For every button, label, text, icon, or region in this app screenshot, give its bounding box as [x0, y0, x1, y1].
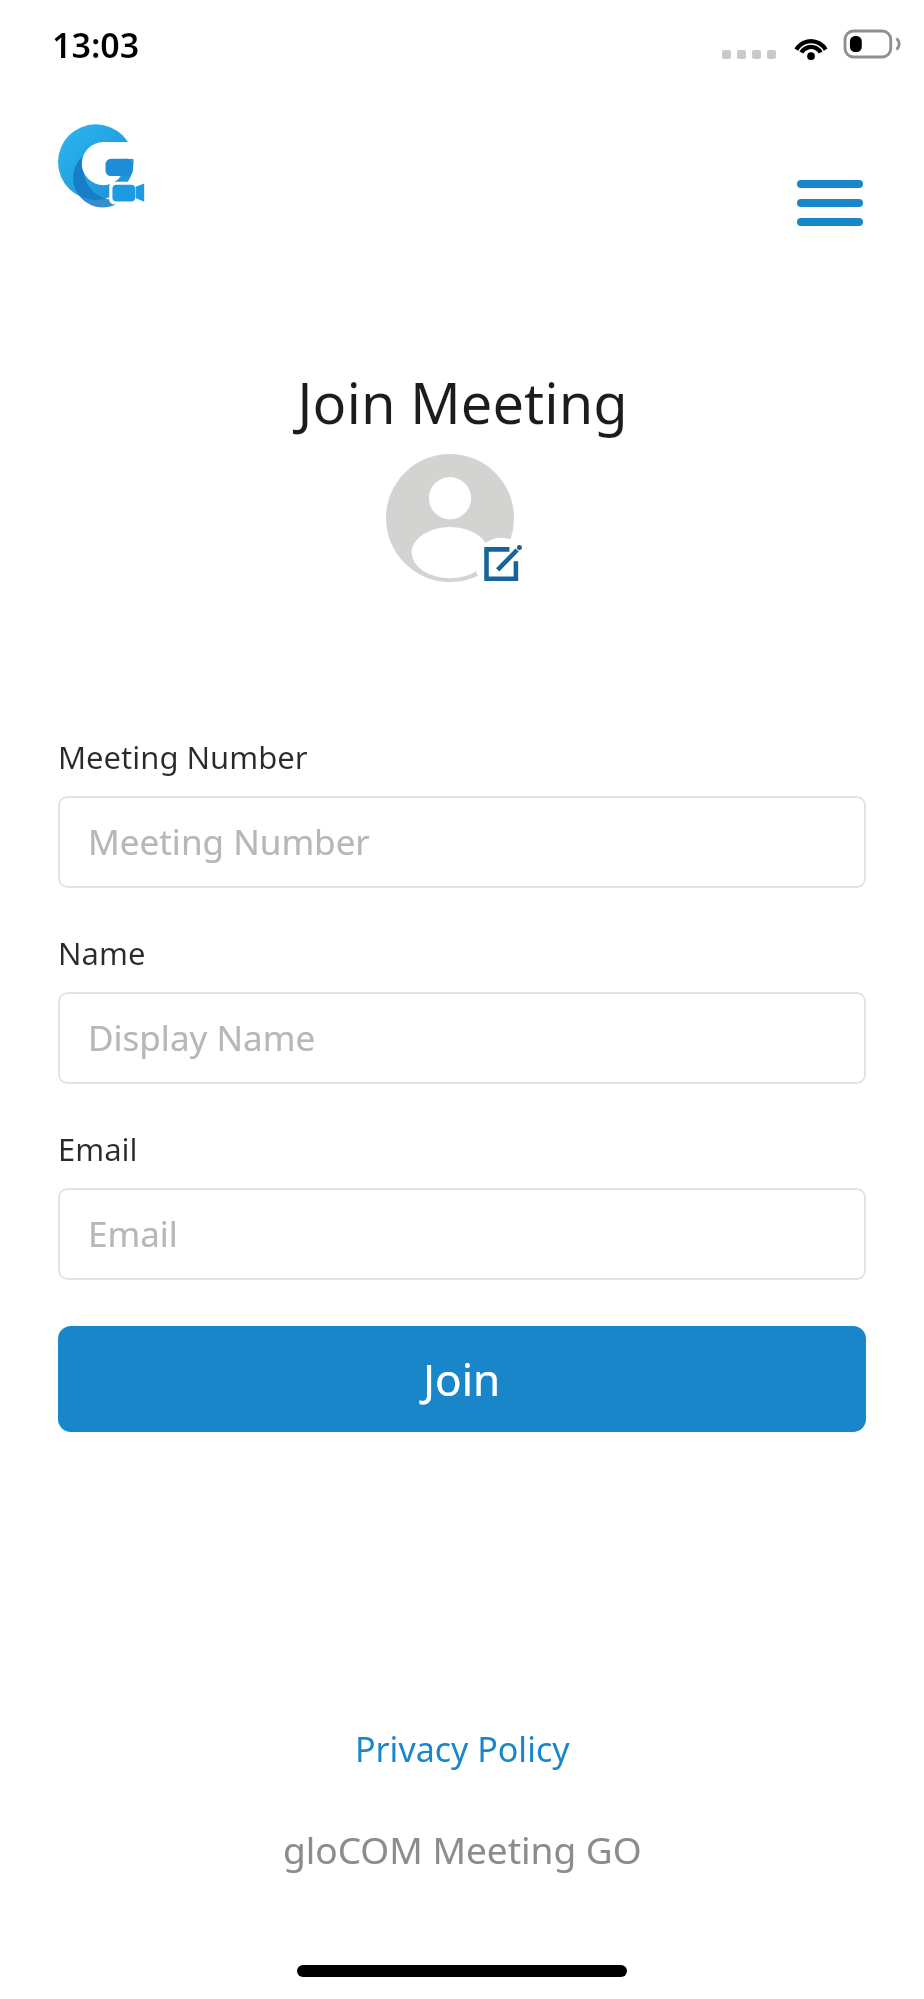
button[interactable]: gloCOM Meeting GO logo — [58, 122, 148, 214]
staticText: Join Meeting — [297, 364, 628, 440]
button[interactable]: Display Name — [58, 992, 866, 1084]
staticText: Meeting Number — [88, 818, 370, 866]
staticText: Name — [58, 932, 146, 974]
staticText: Email — [88, 1210, 178, 1258]
button[interactable]: Menu — [782, 168, 878, 238]
staticText: 13:03 — [52, 22, 140, 68]
staticText: gloCOM Meeting GO — [283, 1824, 642, 1874]
button[interactable]: Privacy Policy — [345, 1722, 580, 1776]
button[interactable]: Meeting Number — [58, 796, 866, 888]
button[interactable]: Edit profile picture — [387, 452, 537, 588]
staticText: Display Name — [88, 1014, 316, 1062]
button[interactable]: Email — [58, 1188, 866, 1280]
staticText: Email — [58, 1128, 138, 1170]
staticText: Join — [423, 1349, 501, 1409]
button[interactable]: Join — [58, 1326, 866, 1432]
staticText: Meeting Number — [58, 736, 308, 778]
staticText: Privacy Policy — [355, 1726, 570, 1772]
